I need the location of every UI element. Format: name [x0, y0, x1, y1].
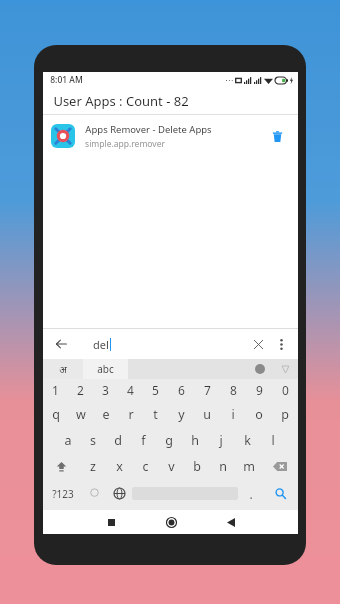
staticText: x — [116, 458, 123, 475]
button[interactable]: 5 — [143, 379, 168, 401]
staticText: j — [219, 432, 223, 449]
button[interactable]: c — [132, 453, 158, 480]
button[interactable]: Collapse keyboard — [277, 361, 293, 377]
button[interactable]: 7 — [194, 379, 220, 401]
staticText: l — [271, 432, 275, 449]
staticText: f — [141, 432, 146, 449]
button[interactable]: h — [182, 427, 208, 453]
staticText: ?123 — [52, 487, 74, 501]
button[interactable]: 6 — [168, 379, 194, 401]
button[interactable]: z — [80, 453, 106, 480]
staticText: simple.app.remover — [85, 138, 165, 150]
staticText: . — [249, 486, 253, 502]
button[interactable]: p — [272, 401, 298, 427]
button[interactable]: Recents — [94, 510, 128, 534]
button[interactable]: Search — [263, 480, 298, 507]
staticText: r — [128, 406, 134, 423]
button[interactable]: f — [130, 427, 156, 453]
button[interactable]: s — [80, 427, 105, 453]
staticText: n — [219, 458, 227, 475]
staticText: Apps Remover - Delete Apps — [85, 123, 212, 136]
staticText: User Apps : Count - 82 — [53, 92, 189, 110]
button[interactable]: a — [55, 427, 80, 453]
staticText: h — [191, 432, 199, 449]
staticText: k — [244, 432, 251, 449]
staticText: d — [114, 432, 122, 449]
button[interactable]: Clear — [248, 334, 268, 354]
button[interactable]: 4 — [118, 379, 143, 401]
staticText: 4 — [127, 382, 134, 398]
button[interactable]: Apps Remover - Delete Apps — [43, 115, 298, 157]
button[interactable]: o — [246, 401, 272, 427]
button[interactable]: More options — [272, 335, 290, 353]
button[interactable]: w — [68, 401, 93, 427]
staticText: t — [153, 406, 158, 423]
staticText: c — [142, 458, 149, 475]
staticText: 9 — [256, 382, 263, 398]
button[interactable]: Shift — [43, 453, 80, 480]
staticText: p — [281, 406, 289, 423]
button[interactable]: e — [93, 401, 118, 427]
button[interactable]: 1 — [43, 379, 68, 401]
button[interactable]: abc — [83, 359, 128, 379]
button[interactable]: Backspace — [262, 453, 298, 480]
staticText: 8 — [230, 382, 237, 398]
button[interactable]: b — [184, 453, 210, 480]
button[interactable]: u — [194, 401, 220, 427]
staticText: 7 — [204, 382, 211, 398]
button[interactable]: v — [158, 453, 184, 480]
staticText: z — [90, 458, 96, 475]
staticText: अ — [59, 362, 67, 376]
button[interactable]: k — [234, 427, 260, 453]
staticText: w — [76, 406, 86, 423]
button[interactable]: q — [43, 401, 68, 427]
button[interactable]: Delete app — [264, 123, 290, 149]
staticText: ⋯ — [225, 76, 233, 85]
button[interactable]: Emoji — [82, 480, 107, 507]
button[interactable]: 8 — [220, 379, 246, 401]
staticText: q — [52, 406, 60, 423]
button[interactable]: 3 — [93, 379, 118, 401]
staticText: abc — [97, 362, 114, 376]
button[interactable]: r — [118, 401, 143, 427]
button[interactable]: अ — [43, 359, 83, 379]
staticText: 0 — [282, 382, 289, 398]
staticText: e — [102, 406, 110, 423]
button[interactable]: l — [260, 427, 286, 453]
staticText: b — [193, 458, 201, 475]
staticText: 2 — [77, 382, 84, 398]
button[interactable]: d — [105, 427, 130, 453]
staticText: 5 — [152, 382, 159, 398]
staticText: 6 — [178, 382, 185, 398]
button[interactable]: m — [236, 453, 262, 480]
button[interactable]: n — [210, 453, 236, 480]
button[interactable]: g — [156, 427, 182, 453]
staticText: o — [255, 406, 263, 423]
button[interactable]: Back — [214, 510, 248, 534]
button[interactable]: 9 — [246, 379, 272, 401]
button[interactable]: y — [168, 401, 194, 427]
staticText: g — [165, 432, 173, 449]
button[interactable]: Back — [51, 334, 71, 354]
button[interactable]: Help — [251, 360, 269, 378]
staticText: s — [90, 432, 96, 449]
button[interactable]: . — [238, 480, 263, 507]
staticText: 3 — [102, 382, 109, 398]
staticText: del — [93, 337, 109, 352]
button[interactable]: 2 — [68, 379, 93, 401]
button[interactable]: i — [220, 401, 246, 427]
staticText: a — [64, 432, 72, 449]
button[interactable]: t — [143, 401, 168, 427]
staticText: 1 — [52, 382, 59, 398]
staticText: 8:01 AM — [50, 74, 83, 86]
staticText: m — [243, 458, 255, 475]
staticText: i — [231, 406, 235, 423]
staticText: y — [178, 406, 185, 423]
button[interactable]: Change language — [107, 480, 132, 507]
button[interactable]: ?123 — [43, 480, 82, 507]
button[interactable]: x — [106, 453, 132, 480]
button[interactable]: Home — [154, 510, 188, 534]
button[interactable]: j — [208, 427, 234, 453]
button[interactable]: 0 — [272, 379, 298, 401]
